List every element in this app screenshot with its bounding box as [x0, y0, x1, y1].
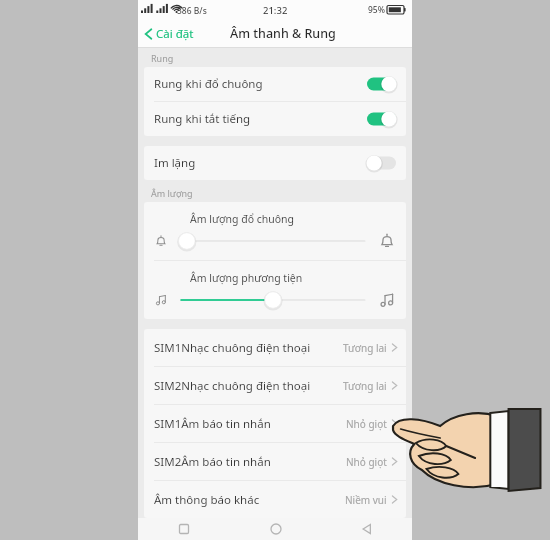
button[interactable]: SIM2Nhạc chuông điện thoại [144, 367, 406, 404]
button[interactable]: Âm thông báo khác [144, 481, 406, 518]
button[interactable]: SIM2Âm báo tin nhắn [144, 443, 406, 480]
staticText: Nhỏ giọt [346, 417, 387, 431]
staticText: Im lặng [154, 155, 367, 171]
staticText: Tương lai [343, 341, 387, 355]
button[interactable]: Recents [138, 518, 230, 540]
button[interactable]: SIM1Nhạc chuông điện thoại [144, 329, 406, 366]
staticText: 21:32 [263, 4, 288, 17]
staticText: Cài đặt [156, 26, 194, 42]
staticText: 586 B/s [177, 5, 207, 17]
staticText: Âm lượng [151, 187, 193, 199]
staticText: SIM1Nhạc chuông điện thoại [154, 340, 343, 356]
button[interactable]: Back [321, 518, 412, 540]
staticText: Nhỏ giọt [346, 455, 387, 469]
button[interactable]: Rung khi tắt tiếng [144, 102, 406, 136]
button[interactable]: SIM1Âm báo tin nhắn [144, 405, 406, 442]
staticText: Âm thông báo khác [154, 492, 345, 508]
staticText: 95% [368, 4, 385, 16]
staticText: Rung [151, 52, 174, 64]
button[interactable]: Home [230, 518, 321, 540]
staticText: Âm lượng đổ chuông [190, 212, 295, 226]
button[interactable]: Âm lượng phương tiện [144, 261, 406, 319]
staticText: Tương lai [343, 379, 387, 393]
staticText: Âm thanh & Rung [230, 25, 336, 42]
staticText: Niềm vui [345, 493, 387, 507]
staticText: Rung khi đổ chuông [154, 76, 367, 92]
staticText: Âm lượng phương tiện [190, 271, 303, 285]
button[interactable]: Âm lượng đổ chuông [144, 202, 406, 260]
staticText: SIM2Nhạc chuông điện thoại [154, 378, 343, 394]
staticText: SIM2Âm báo tin nhắn [154, 454, 346, 470]
button[interactable]: Rung khi đổ chuông [144, 67, 406, 101]
button[interactable]: Im lặng [144, 146, 406, 180]
button[interactable]: Cài đặt [138, 23, 200, 45]
staticText: SIM1Âm báo tin nhắn [154, 416, 346, 432]
staticText: Rung khi tắt tiếng [154, 111, 367, 127]
